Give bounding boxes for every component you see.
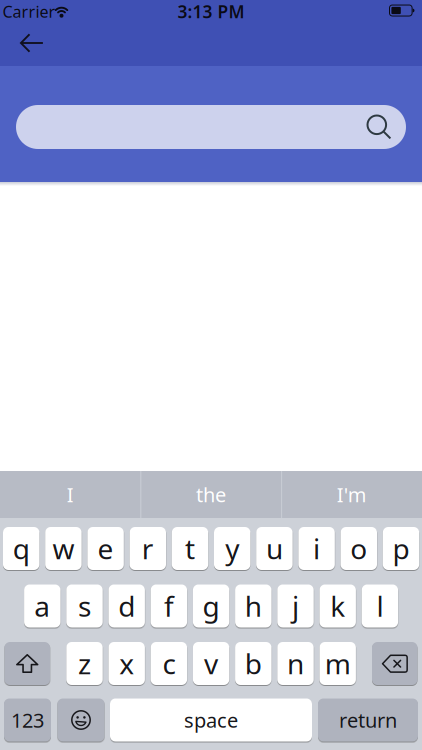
button[interactable]: t	[172, 527, 208, 570]
staticText: d	[118, 587, 135, 625]
button[interactable]: y	[214, 527, 250, 570]
staticText: u	[266, 530, 283, 567]
button[interactable]: space	[110, 698, 312, 741]
button[interactable]: i	[298, 527, 335, 570]
button[interactable]: m	[319, 642, 356, 685]
staticText: 123	[11, 707, 44, 733]
staticText: h	[245, 587, 262, 625]
button[interactable]: d	[108, 584, 145, 627]
button[interactable]: Emoji	[57, 698, 104, 741]
staticText: s	[78, 587, 91, 625]
button[interactable]: r	[130, 527, 166, 570]
staticText: the	[196, 481, 226, 508]
staticText: j	[292, 587, 299, 625]
button[interactable]: I'm	[282, 471, 422, 518]
button[interactable]: s	[66, 584, 103, 627]
button[interactable]: g	[193, 584, 229, 627]
button[interactable]: Back	[8, 23, 56, 63]
button[interactable]: f	[151, 584, 187, 627]
staticText: t	[185, 530, 195, 567]
button[interactable]: 123	[4, 698, 51, 741]
staticText: r	[142, 530, 154, 567]
button[interactable]: the	[141, 471, 281, 518]
staticText: l	[376, 587, 383, 625]
button[interactable]: a	[24, 584, 60, 627]
button[interactable]: n	[277, 642, 314, 685]
button[interactable]: Search	[16, 105, 406, 149]
staticText: p	[392, 530, 409, 567]
staticText: return	[339, 707, 397, 733]
staticText: space	[184, 707, 238, 733]
staticText: a	[34, 587, 50, 625]
staticText: I'm	[337, 481, 367, 508]
staticText: Carrier	[2, 1, 55, 22]
button[interactable]: c	[151, 642, 187, 685]
button[interactable]: h	[235, 584, 271, 627]
staticText: w	[52, 530, 74, 567]
staticText: g	[203, 587, 220, 625]
button[interactable]: q	[3, 527, 39, 570]
button[interactable]: return	[318, 698, 418, 741]
button[interactable]: u	[256, 527, 293, 570]
button[interactable]: v	[193, 642, 229, 685]
button[interactable]: j	[277, 584, 314, 627]
staticText: q	[13, 530, 30, 567]
staticText: o	[350, 530, 367, 567]
button[interactable]: p	[383, 527, 419, 570]
staticText: I	[67, 481, 74, 508]
button[interactable]: Shift	[4, 642, 50, 685]
staticText: y	[225, 530, 239, 567]
staticText: m	[325, 645, 351, 682]
button[interactable]: o	[341, 527, 377, 570]
button[interactable]: k	[319, 584, 356, 627]
staticText: n	[287, 645, 304, 682]
staticText: v	[204, 645, 218, 682]
staticText: 3:13 PM	[177, 0, 244, 23]
staticText: k	[330, 587, 345, 625]
button[interactable]: l	[362, 584, 398, 627]
button[interactable]: Delete	[372, 642, 417, 685]
staticText: i	[313, 530, 320, 567]
staticText: f	[164, 587, 174, 625]
staticText: z	[78, 645, 91, 682]
staticText: x	[119, 645, 134, 682]
staticText: b	[245, 645, 262, 682]
button[interactable]: b	[235, 642, 271, 685]
staticText: e	[98, 530, 114, 567]
button[interactable]: w	[45, 527, 82, 570]
button[interactable]: z	[66, 642, 103, 685]
button[interactable]: x	[108, 642, 145, 685]
button[interactable]: I	[0, 471, 140, 518]
staticText: c	[162, 645, 175, 682]
button[interactable]: e	[87, 527, 124, 570]
